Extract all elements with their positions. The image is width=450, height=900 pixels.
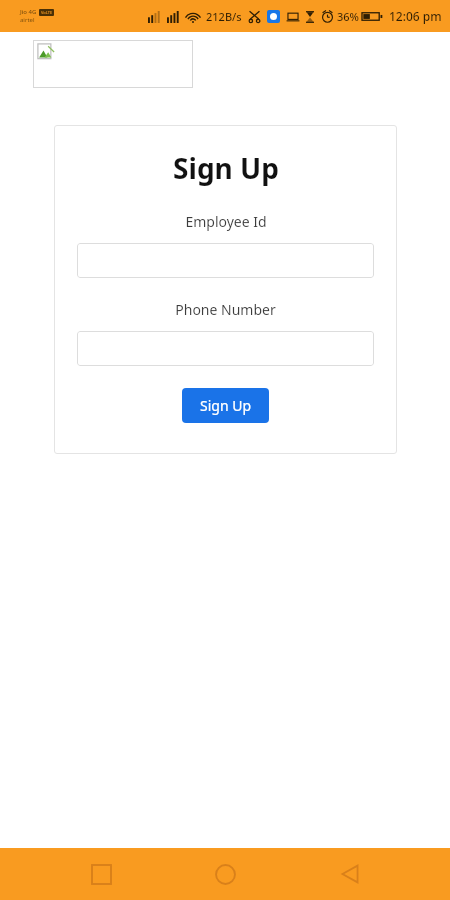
staticText: 12:06 pm [389,8,442,24]
staticText: Sign Up [200,396,252,415]
button[interactable]: Sign Up [182,388,269,423]
button[interactable] [77,243,374,278]
staticText: Jio 4G [20,8,37,16]
staticText: 212B/s [206,9,242,24]
staticText: VoLTE [41,10,53,15]
button[interactable] [77,331,374,366]
button[interactable]: Recent apps [77,850,125,898]
staticText: Employee Id [185,212,267,231]
staticText: 36% [337,9,359,24]
staticText: airtel [20,16,35,24]
button[interactable]: Home [201,850,249,898]
staticText: Sign Up [173,149,279,187]
staticText: Phone Number [175,300,276,319]
button[interactable]: Back [326,850,374,898]
